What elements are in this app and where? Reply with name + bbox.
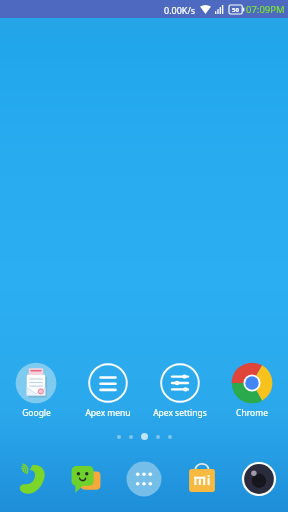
button[interactable]: Apex settings bbox=[147, 360, 213, 421]
staticText: Google bbox=[22, 407, 51, 419]
staticText: 0.00K/s bbox=[164, 4, 196, 16]
staticText: Apex settings bbox=[153, 407, 207, 419]
staticText: 50 bbox=[232, 6, 239, 14]
staticText: 07:09PM bbox=[246, 3, 285, 16]
staticText: Apex menu bbox=[85, 407, 131, 419]
button[interactable]: Chrome bbox=[219, 360, 285, 421]
button[interactable]: Messaging bbox=[62, 455, 110, 503]
button[interactable]: All apps bbox=[120, 455, 168, 503]
button[interactable]: Apex menu bbox=[75, 360, 141, 421]
staticText: Chrome bbox=[236, 407, 268, 419]
button[interactable]: Google bbox=[3, 360, 69, 421]
button[interactable]: Camera bbox=[235, 455, 283, 503]
button[interactable]: Phone bbox=[5, 455, 53, 503]
button[interactable]: Mi Store bbox=[178, 455, 226, 503]
